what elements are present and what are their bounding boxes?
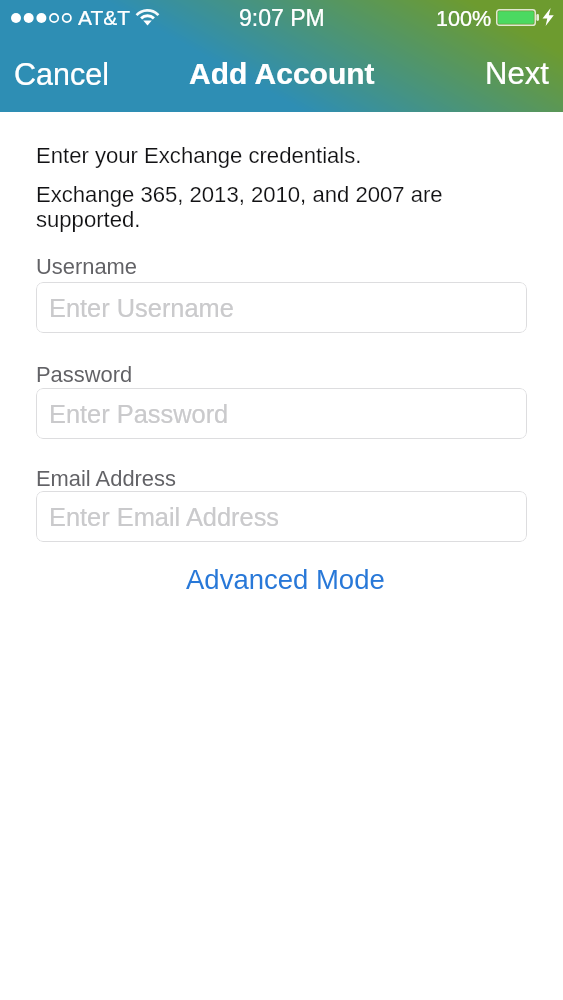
staticText: Next — [485, 56, 549, 91]
staticText: Email Address — [36, 466, 176, 490]
staticText: Enter Username — [49, 294, 234, 322]
staticText: 9:07 PM — [239, 5, 325, 31]
staticText: Enter your Exchange credentials. — [36, 143, 362, 168]
staticText: Username — [36, 254, 137, 278]
button[interactable]: Next — [469, 47, 563, 100]
button[interactable]: Enter Username — [36, 282, 527, 333]
staticText: 100% — [436, 6, 492, 30]
staticText: Exchange 365, 2013, 2010, and 2007 are s… — [36, 182, 456, 232]
staticText: Cancel — [14, 57, 109, 91]
staticText: Password — [36, 362, 133, 386]
button[interactable]: Cancel — [0, 48, 125, 100]
button[interactable]: Advanced Mode — [178, 559, 393, 600]
staticText: Enter Email Address — [49, 503, 280, 531]
button[interactable]: Enter Password — [36, 388, 527, 439]
other: Charging — [542, 8, 554, 26]
staticText: Enter Password — [49, 400, 229, 428]
staticText: Add Account — [189, 57, 375, 91]
staticText: Advanced Mode — [186, 564, 385, 595]
button[interactable]: Enter Email Address — [36, 491, 527, 542]
other: Battery full — [496, 9, 540, 26]
other: Wi-Fi — [136, 9, 159, 28]
staticText: AT&T — [78, 6, 131, 29]
